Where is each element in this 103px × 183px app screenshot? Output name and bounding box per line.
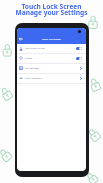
staticText: Touch Lock Screen	[42, 38, 61, 41]
button[interactable]: Back	[18, 36, 24, 42]
button[interactable]: Vibrate	[17, 53, 86, 63]
staticText: Manage your Settings	[0, 8, 103, 17]
staticText: Lock Screen On/Off	[25, 47, 76, 50]
button[interactable]: Set Wallpaper	[17, 63, 86, 73]
button[interactable]: Lock Screen On/Off	[17, 44, 86, 53]
staticText: Vibrate	[25, 57, 76, 60]
staticText: Set Wallpaper	[25, 67, 80, 70]
button[interactable]: Hide Notification	[17, 73, 86, 83]
staticText: Touch Lock Screen	[0, 2, 103, 11]
staticText: Hide Notification	[25, 77, 80, 80]
